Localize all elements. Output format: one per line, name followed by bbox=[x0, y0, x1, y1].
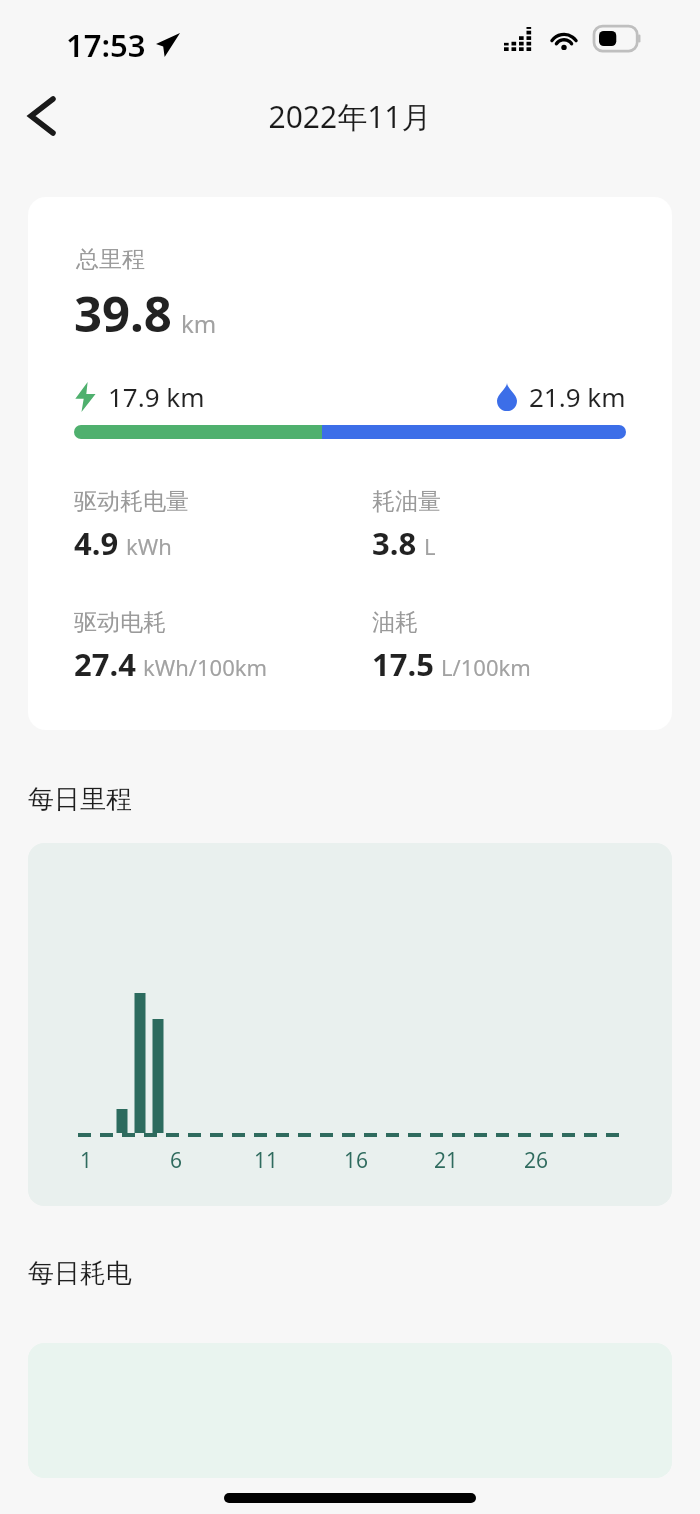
staticText: 油耗 bbox=[372, 608, 418, 637]
staticText: kWh bbox=[126, 531, 172, 561]
staticText: 驱动电耗 bbox=[74, 608, 166, 637]
staticText: 26 bbox=[516, 1146, 556, 1175]
staticText: 总里程 bbox=[76, 245, 145, 274]
staticText: 6 bbox=[156, 1146, 196, 1175]
staticText: 21 bbox=[426, 1146, 466, 1175]
staticText: 3.8 bbox=[372, 522, 417, 564]
staticText: 27.4 bbox=[74, 643, 136, 685]
staticText: 1 bbox=[66, 1146, 106, 1175]
staticText: 11 bbox=[246, 1146, 286, 1175]
staticText: 耗油量 bbox=[372, 487, 441, 516]
staticText: 每日耗电 bbox=[28, 1257, 132, 1290]
staticText: 每日里程 bbox=[28, 783, 132, 816]
staticText: 17:53 bbox=[66, 24, 146, 66]
staticText: 39.8 bbox=[74, 280, 172, 347]
staticText: 16 bbox=[336, 1146, 376, 1175]
staticText: 4.9 bbox=[74, 522, 119, 564]
button[interactable]: Back bbox=[12, 86, 72, 146]
staticText: L/100km bbox=[441, 652, 531, 682]
button[interactable]: 总里程 bbox=[28, 197, 672, 730]
staticText: 17.9 km bbox=[108, 379, 205, 414]
staticText: km bbox=[181, 307, 217, 340]
staticText: 17.5 bbox=[372, 643, 434, 685]
button[interactable]: 1 bbox=[28, 843, 672, 1206]
staticText: 2022年11月 bbox=[0, 96, 700, 137]
staticText: L bbox=[424, 531, 436, 561]
staticText: 驱动耗电量 bbox=[74, 487, 189, 516]
staticText: 21.9 km bbox=[529, 379, 626, 414]
staticText: kWh/100km bbox=[143, 652, 268, 682]
